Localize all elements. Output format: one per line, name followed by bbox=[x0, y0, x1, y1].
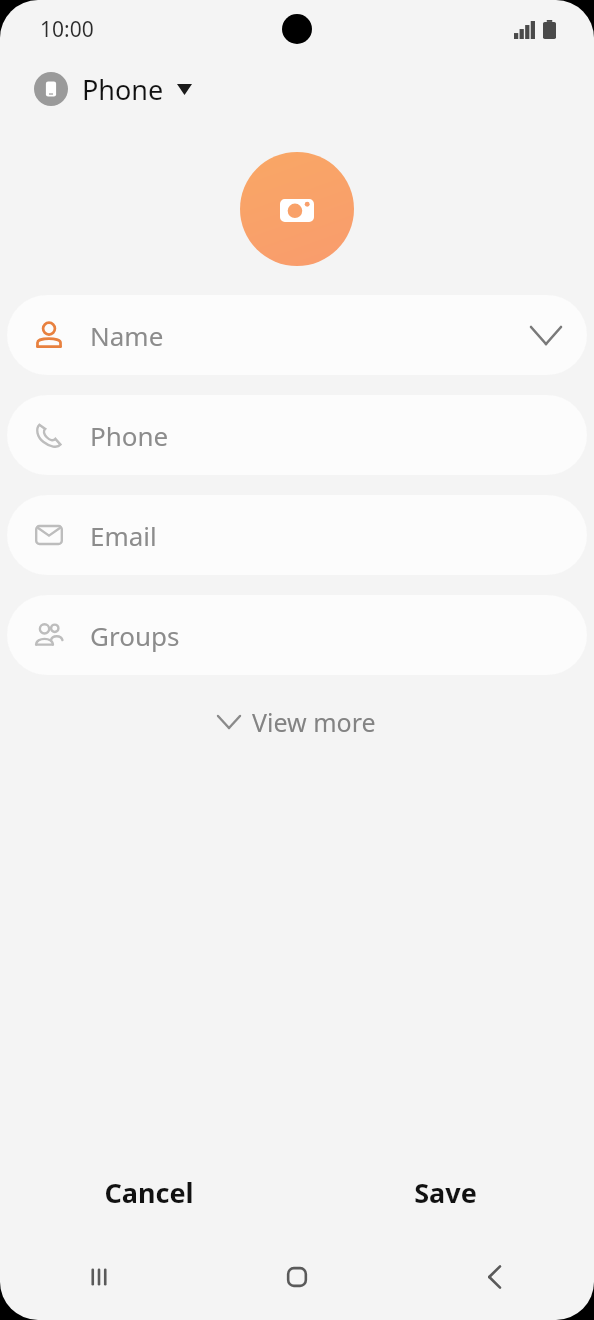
staticText: Phone bbox=[82, 71, 164, 108]
button[interactable]: Save bbox=[297, 1160, 594, 1224]
button[interactable]: Phone bbox=[0, 58, 594, 120]
button[interactable]: Recent apps bbox=[0, 1252, 198, 1302]
button[interactable]: Back bbox=[396, 1252, 594, 1302]
staticText: Email bbox=[90, 518, 157, 553]
staticText: Phone bbox=[90, 418, 169, 453]
button[interactable]: Groups bbox=[7, 595, 587, 675]
button[interactable]: Cancel bbox=[0, 1160, 297, 1224]
staticText: Name bbox=[90, 318, 164, 353]
staticText: Cancel bbox=[104, 1174, 194, 1211]
button[interactable]: Add photo bbox=[240, 152, 354, 266]
staticText: Groups bbox=[90, 618, 180, 653]
staticText: Save bbox=[414, 1174, 477, 1211]
staticText: View more bbox=[252, 705, 376, 739]
button[interactable]: Name bbox=[7, 295, 587, 375]
staticText: 10:00 bbox=[40, 15, 94, 44]
button[interactable]: Home bbox=[198, 1252, 396, 1302]
button[interactable]: Email bbox=[7, 495, 587, 575]
button[interactable]: View more bbox=[202, 695, 392, 749]
button[interactable]: Phone bbox=[7, 395, 587, 475]
